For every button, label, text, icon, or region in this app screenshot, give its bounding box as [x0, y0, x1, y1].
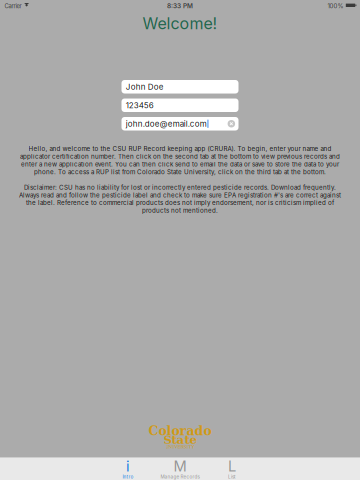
staticText: John Doe	[126, 82, 164, 92]
staticText: List	[228, 474, 236, 480]
button[interactable]: i	[102, 457, 154, 480]
button[interactable]: L	[206, 457, 258, 480]
staticText: Manage Records	[160, 474, 199, 480]
staticText: products not mentioned.	[142, 207, 218, 214]
staticText: 8:33 PM	[167, 2, 193, 10]
staticText: Always read and follow the pesticide lab…	[19, 191, 341, 199]
staticText: Hello, and welcome to the CSU RUP Record…	[28, 145, 331, 153]
staticText: john.doe@email.com	[126, 119, 207, 129]
staticText: M	[173, 457, 186, 475]
staticText: L	[228, 457, 236, 475]
button[interactable]: M	[154, 457, 206, 480]
staticText: 123456	[126, 100, 154, 110]
staticText: Intro	[122, 474, 133, 480]
staticText: UNIVERSITY	[165, 444, 194, 449]
staticText: enter a new application event. You can t…	[21, 160, 339, 168]
button[interactable]: 123456	[121, 98, 238, 112]
staticText: applicator certification number. Then cl…	[20, 153, 340, 160]
button[interactable]: john.doe@email.com	[121, 117, 238, 130]
staticText: Carrier	[5, 2, 22, 10]
staticText: 100%	[328, 2, 344, 10]
staticText: phone. To access a RUP list from Colorad…	[34, 168, 326, 176]
staticText: Welcome!	[142, 14, 217, 33]
staticText: Disclaimer: CSU has no liability for los…	[24, 184, 336, 191]
staticText: i	[126, 457, 130, 475]
staticText: Colorado	[148, 424, 211, 438]
staticText: the label. Reference to commercial produ…	[26, 199, 334, 207]
button[interactable]: John Doe	[121, 80, 238, 93]
staticText: State	[163, 433, 196, 446]
